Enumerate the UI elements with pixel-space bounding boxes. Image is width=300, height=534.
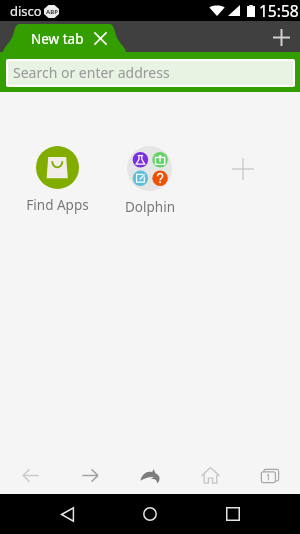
staticText: Find Apps	[26, 196, 89, 214]
button[interactable]: Find Apps	[11, 146, 103, 214]
button[interactable]: Tabs	[240, 457, 300, 494]
staticText: Dolphin	[125, 198, 175, 216]
staticText: Search or enter address	[13, 63, 170, 82]
button[interactable]: Close tab	[89, 27, 111, 49]
button[interactable]: Home	[180, 457, 240, 494]
staticText: 15:58	[259, 0, 299, 21]
staticText: ABP	[46, 8, 58, 16]
staticText: New tab	[31, 30, 84, 48]
button[interactable]: Back	[0, 457, 60, 494]
button[interactable]: Home	[130, 494, 170, 534]
button[interactable]: Back	[46, 494, 86, 534]
button[interactable]: Dolphin	[103, 146, 196, 216]
staticText: disco	[10, 2, 42, 20]
button[interactable]: Add shortcut	[221, 146, 265, 190]
button[interactable]: Search or enter address	[8, 61, 293, 85]
button[interactable]: Forward	[60, 457, 120, 494]
button[interactable]: New tab	[268, 24, 294, 50]
button[interactable]: Recents	[213, 494, 253, 534]
button[interactable]: Dolphin menu	[120, 457, 180, 494]
